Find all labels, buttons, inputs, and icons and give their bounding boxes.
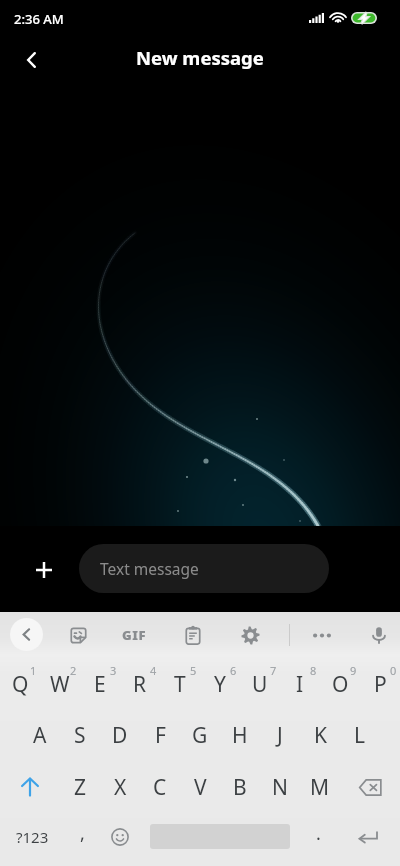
button[interactable]: Shift bbox=[0, 762, 60, 812]
staticText: GIF bbox=[122, 626, 147, 644]
staticText: J bbox=[277, 721, 283, 750]
staticText: O bbox=[332, 670, 349, 699]
button[interactable]: Y bbox=[200, 659, 240, 709]
button[interactable]: Voice input bbox=[363, 619, 395, 651]
button[interactable]: I bbox=[280, 659, 320, 709]
button[interactable]: N bbox=[260, 762, 300, 812]
button[interactable]: G bbox=[180, 710, 220, 760]
button[interactable]: P bbox=[360, 659, 400, 709]
button[interactable]: K bbox=[300, 710, 340, 760]
staticText: C bbox=[153, 773, 167, 802]
staticText: W bbox=[50, 670, 70, 699]
staticText: , bbox=[80, 821, 85, 846]
button[interactable]: C bbox=[140, 762, 180, 812]
staticText: New message bbox=[136, 45, 264, 70]
staticText: S bbox=[74, 721, 86, 750]
staticText: 0 bbox=[390, 663, 397, 678]
button[interactable]: A bbox=[20, 710, 60, 760]
button[interactable]: . bbox=[298, 812, 338, 862]
staticText: I bbox=[296, 670, 304, 699]
button[interactable]: Add attachment bbox=[27, 553, 61, 587]
staticText: V bbox=[194, 773, 207, 802]
staticText: D bbox=[112, 721, 128, 750]
button[interactable]: E bbox=[80, 659, 120, 709]
staticText: Y bbox=[214, 670, 226, 699]
staticText: 4 bbox=[150, 663, 157, 678]
button[interactable]: V bbox=[180, 762, 220, 812]
button[interactable]: R bbox=[120, 659, 160, 709]
button[interactable]: H bbox=[220, 710, 260, 760]
staticText: F bbox=[155, 721, 166, 750]
button[interactable]: S bbox=[60, 710, 100, 760]
staticText: H bbox=[232, 721, 248, 750]
button[interactable]: B bbox=[220, 762, 260, 812]
staticText: Q bbox=[12, 670, 29, 699]
button[interactable]: ?123 bbox=[2, 812, 62, 862]
staticText: P bbox=[374, 670, 387, 699]
staticText: ?123 bbox=[16, 827, 49, 847]
staticText: 2 bbox=[70, 663, 77, 678]
button[interactable]: T bbox=[160, 659, 200, 709]
staticText: 7 bbox=[270, 663, 277, 678]
staticText: 6 bbox=[230, 663, 237, 678]
staticText: 5 bbox=[190, 663, 197, 678]
button[interactable]: Emoji bbox=[101, 812, 139, 862]
button[interactable]: Stickers bbox=[62, 619, 94, 651]
button[interactable]: U bbox=[240, 659, 280, 709]
button[interactable]: Enter bbox=[347, 812, 389, 862]
staticText: 8 bbox=[310, 663, 317, 678]
staticText: 2:36 AM bbox=[14, 10, 64, 28]
staticText: L bbox=[354, 721, 366, 750]
staticText: K bbox=[314, 721, 327, 750]
staticText: X bbox=[114, 773, 127, 802]
button[interactable]: Back bbox=[9, 38, 53, 82]
button[interactable]: Text message bbox=[79, 544, 329, 593]
staticText: M bbox=[310, 773, 330, 802]
staticText: B bbox=[233, 773, 247, 802]
button[interactable]: D bbox=[100, 710, 140, 760]
button[interactable]: X bbox=[100, 762, 140, 812]
staticText: R bbox=[133, 670, 147, 699]
button[interactable]: Q bbox=[0, 659, 40, 709]
staticText: 9 bbox=[350, 663, 357, 678]
button[interactable]: Close toolbar bbox=[10, 618, 43, 651]
button[interactable]: O bbox=[320, 659, 360, 709]
staticText: G bbox=[192, 721, 208, 750]
staticText: T bbox=[174, 670, 186, 699]
button[interactable]: Z bbox=[60, 762, 100, 812]
button[interactable]: F bbox=[140, 710, 180, 760]
button[interactable]: , bbox=[62, 812, 102, 862]
staticText: A bbox=[33, 721, 47, 750]
staticText: N bbox=[272, 773, 288, 802]
button[interactable]: Backspace bbox=[340, 762, 400, 812]
staticText: . bbox=[316, 821, 321, 846]
button[interactable]: M bbox=[300, 762, 340, 812]
button[interactable]: Clipboard bbox=[177, 619, 209, 651]
staticText: Z bbox=[74, 773, 87, 802]
staticText: Text message bbox=[100, 558, 199, 579]
staticText: U bbox=[252, 670, 268, 699]
staticText: 3 bbox=[110, 663, 117, 678]
button[interactable]: J bbox=[260, 710, 300, 760]
staticText: E bbox=[94, 670, 106, 699]
staticText: 1 bbox=[30, 663, 37, 678]
button[interactable]: GIF bbox=[116, 617, 152, 653]
button[interactable]: More options bbox=[306, 619, 338, 651]
button[interactable]: W bbox=[40, 659, 80, 709]
button[interactable]: L bbox=[340, 710, 380, 760]
button[interactable]: Settings bbox=[234, 619, 266, 651]
